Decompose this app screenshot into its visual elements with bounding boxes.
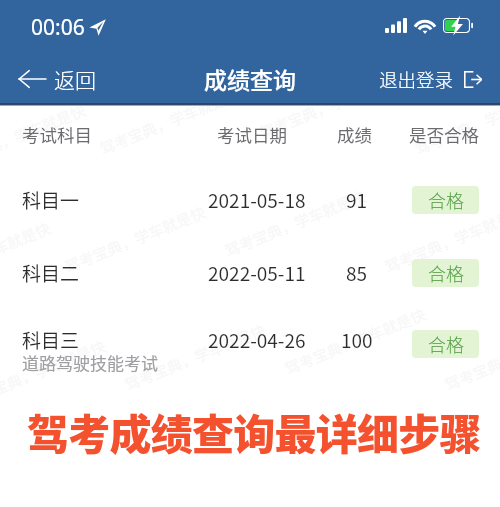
button[interactable]: 科目三 bbox=[0, 316, 500, 378]
staticText: 85 bbox=[346, 259, 368, 287]
staticText: 科目二 bbox=[22, 259, 80, 287]
staticText: 100 bbox=[341, 326, 373, 354]
staticText: 驾考成绩查询最详细步骤 bbox=[27, 401, 481, 462]
staticText: 考试日期 bbox=[217, 122, 287, 147]
staticText: 科目一 bbox=[22, 186, 80, 214]
staticText: 驾考宝典，学车就是快 bbox=[61, 200, 210, 277]
staticText: 驾考宝典，学车就是快 bbox=[0, 334, 110, 396]
staticText: 00:06 bbox=[31, 13, 85, 42]
staticText: 合格 bbox=[428, 187, 464, 213]
staticText: 合格 bbox=[428, 260, 464, 286]
staticText: 成绩查询 bbox=[0, 62, 500, 95]
button[interactable]: 退出登录 bbox=[375, 63, 486, 96]
staticText: 2021-05-18 bbox=[208, 186, 306, 214]
staticText: 道路驾驶技能考试 bbox=[22, 350, 158, 375]
staticText: 驾考宝典，学车就是快 bbox=[121, 318, 270, 395]
staticText: 驾考宝典，学车就是快 bbox=[256, 106, 405, 143]
staticText: 驾考宝典，学车就是快 bbox=[381, 200, 500, 277]
staticText: 91 bbox=[346, 186, 368, 214]
staticText: 驾考宝典，学车就是快 bbox=[411, 106, 500, 159]
staticText: 退出登录 bbox=[379, 66, 454, 93]
staticText: 驾考宝典，学车就是快 bbox=[221, 184, 370, 261]
button[interactable]: 科目二 bbox=[0, 249, 500, 291]
button[interactable]: 返回 bbox=[14, 60, 100, 98]
staticText: 2022-04-26 bbox=[208, 326, 306, 354]
other: 退出登录 bbox=[464, 71, 482, 88]
staticText: 成绩 bbox=[337, 122, 372, 147]
button[interactable]: 科目一 bbox=[0, 176, 500, 218]
staticText: 驾考宝典，学车就是快 bbox=[281, 302, 430, 379]
staticText: 科目三 bbox=[22, 326, 80, 354]
staticText: 驾考宝典，学车就是快 bbox=[441, 318, 500, 395]
staticText: 考试科目 bbox=[22, 122, 92, 147]
staticText: 是否合格 bbox=[409, 122, 479, 147]
staticText: 返回 bbox=[54, 64, 96, 94]
staticText: 驾考宝典，学车就是快 bbox=[96, 106, 245, 159]
staticText: 驾考宝典，学车就是快 bbox=[0, 106, 90, 175]
staticText: 驾考宝典，学车就是快 bbox=[0, 216, 55, 293]
staticText: 2022-05-11 bbox=[208, 259, 306, 287]
staticText: 合格 bbox=[428, 331, 464, 357]
